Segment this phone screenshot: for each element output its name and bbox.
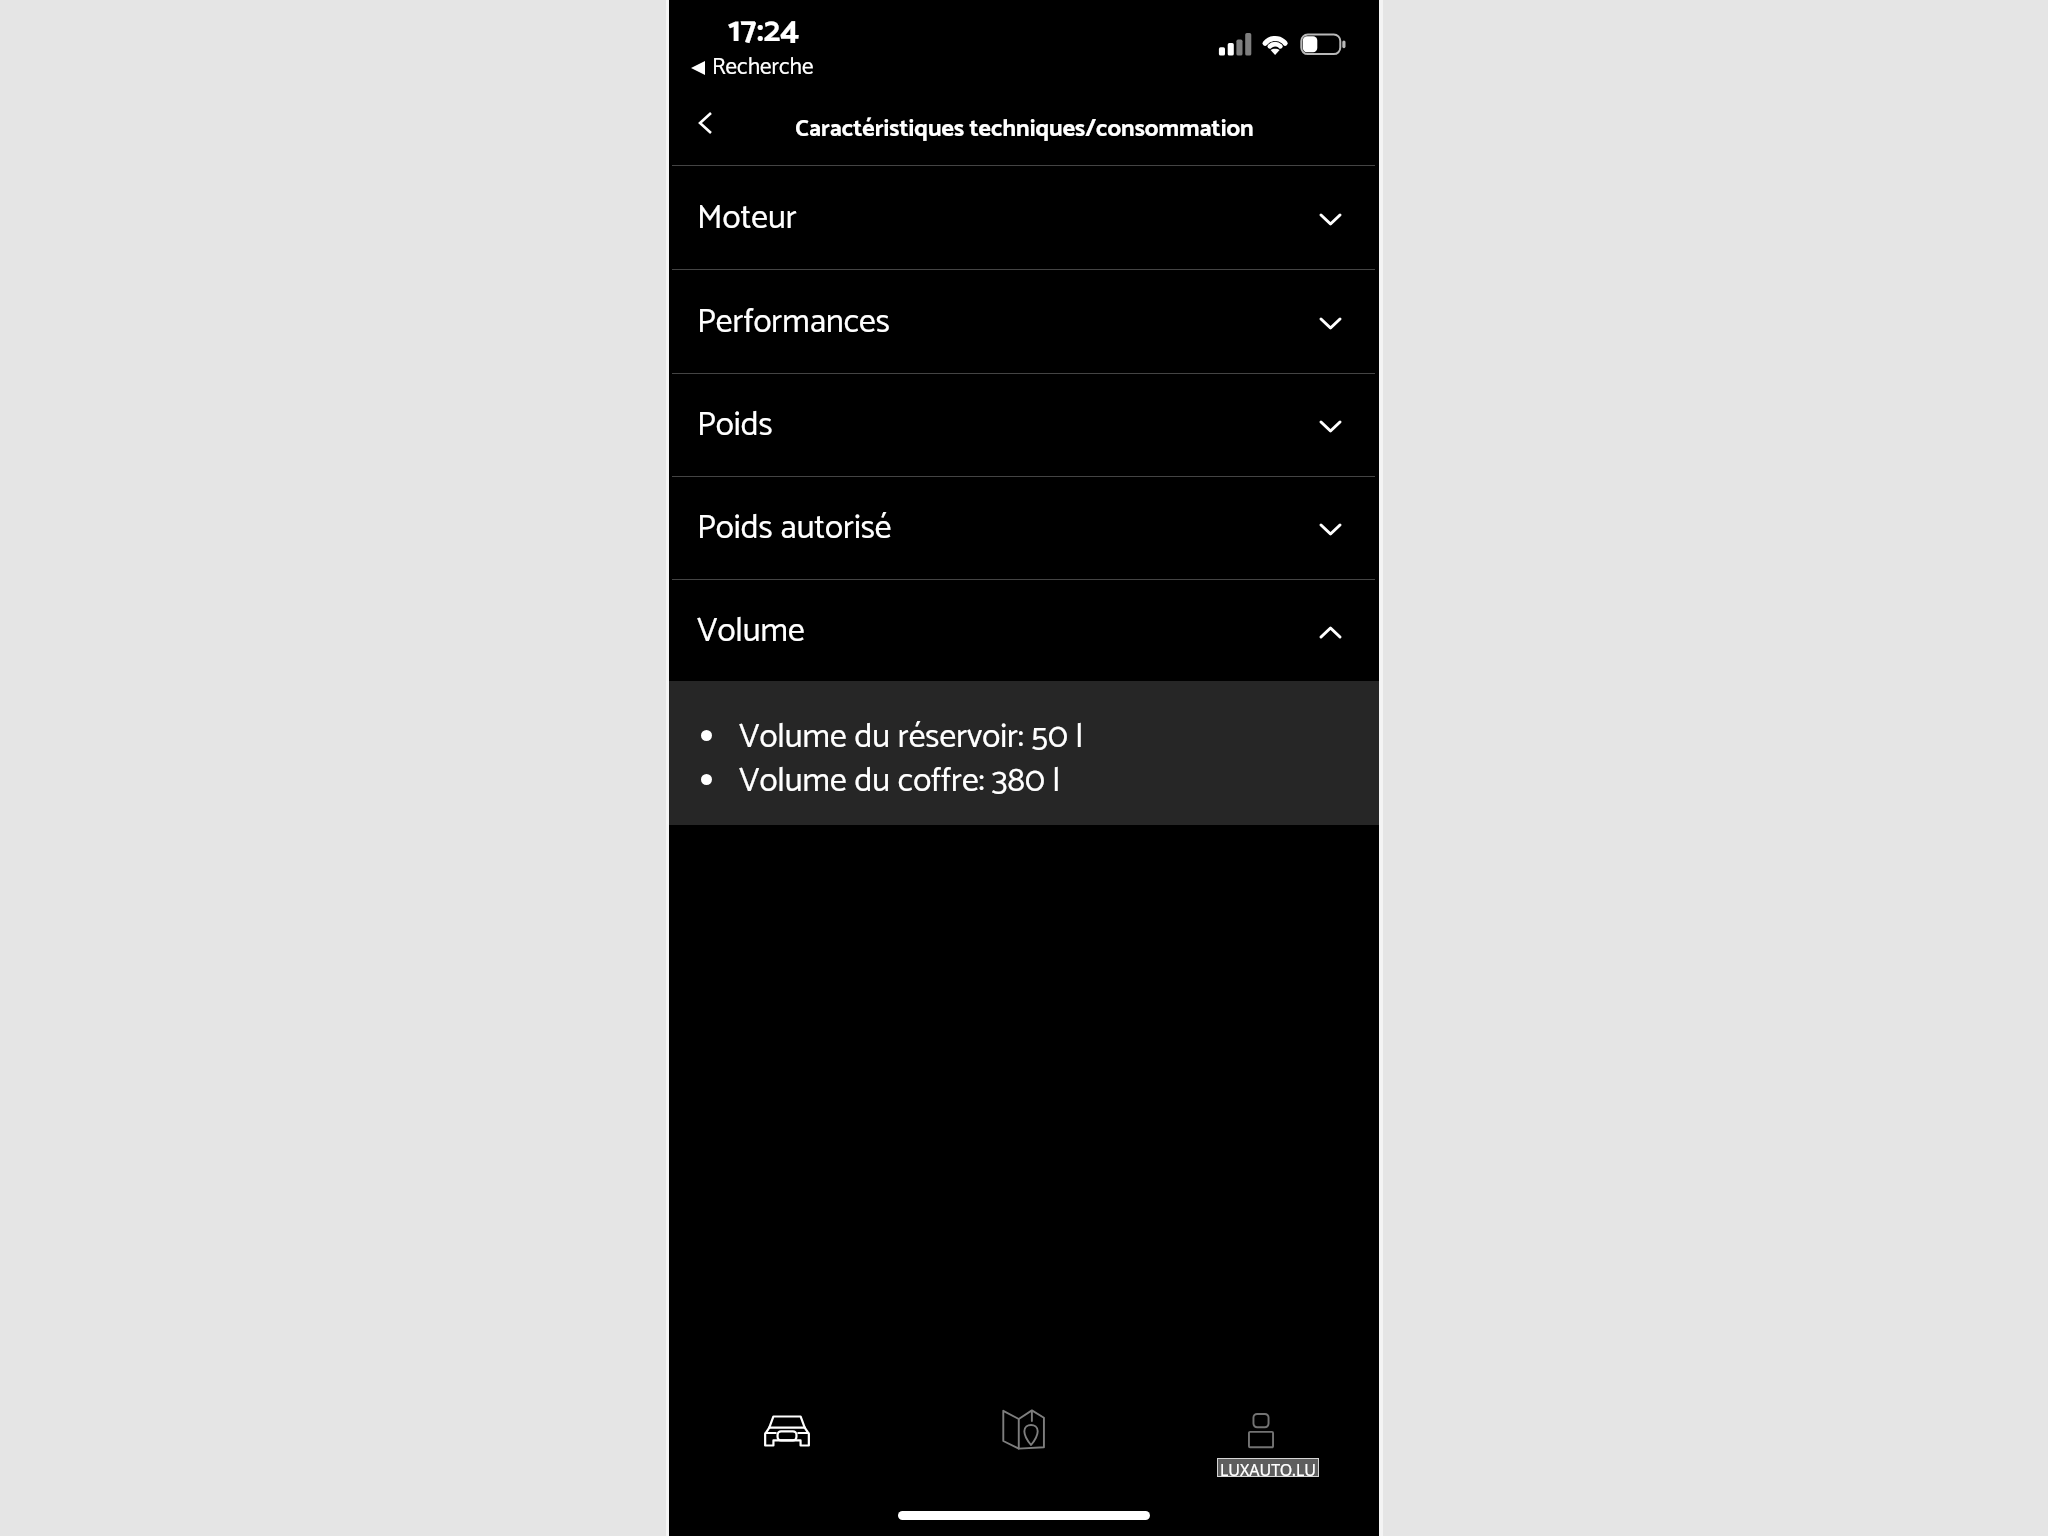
staticText: Recherche [712,49,814,87]
button[interactable]: Poids [669,373,1379,476]
staticText: Poids [697,398,773,453]
button[interactable]: Vehicles [669,1382,905,1492]
button[interactable]: Performances [669,269,1379,373]
button[interactable]: Profile [1142,1382,1379,1492]
staticText: Volume [697,604,805,659]
button[interactable]: Recherche [691,49,814,87]
staticText: LUXAUTO.LU [1220,1459,1316,1476]
staticText: Poids autorisé [697,501,892,556]
button[interactable]: Map [905,1382,1142,1492]
staticText: Caractéristiques techniques/consommation [795,110,1254,149]
staticText: Volume du réservoir: 50 l [739,710,1084,762]
button[interactable]: Volume [669,579,1379,682]
button[interactable]: Poids autorisé [669,476,1379,579]
button[interactable]: Back [675,95,735,151]
staticText: Volume du coffre: 380 l [739,754,1061,806]
staticText: Moteur [697,191,797,246]
staticText: Performances [697,295,890,350]
button[interactable]: Moteur [669,165,1379,269]
staticText: 17:24 [728,4,800,60]
